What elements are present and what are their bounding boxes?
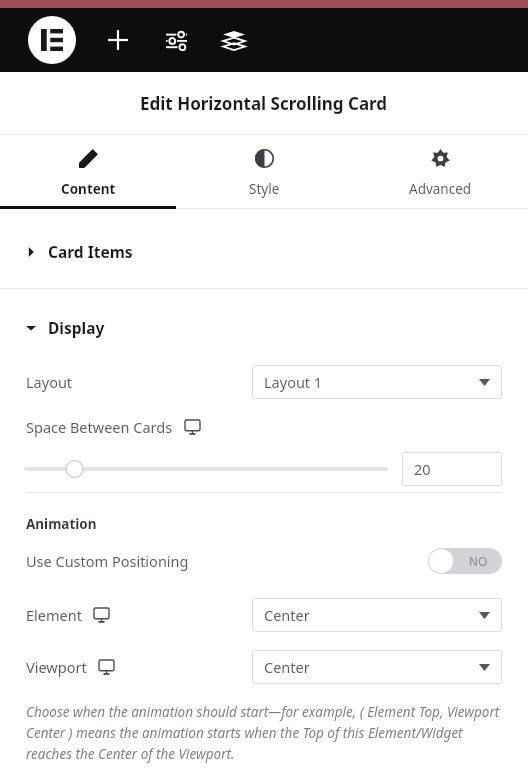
staticText: Layout	[26, 372, 73, 392]
button[interactable]: Center	[252, 598, 502, 632]
staticText: Content	[61, 180, 116, 198]
staticText: Edit Horizontal Scrolling Card	[140, 92, 388, 115]
button[interactable]	[26, 457, 386, 481]
staticText: Use Custom Positioning	[26, 551, 189, 571]
staticText: Center	[264, 605, 310, 625]
button[interactable]: Advanced	[352, 135, 528, 206]
staticText: Space Between Cards	[26, 417, 173, 437]
staticText: Card Items	[48, 241, 133, 262]
staticText: Display	[48, 317, 105, 338]
staticText: Animation	[26, 515, 97, 533]
button[interactable]: Card Items	[0, 209, 528, 288]
button[interactable]: Style	[176, 135, 352, 206]
button[interactable]: Settings	[156, 20, 196, 60]
button[interactable]: NO	[428, 548, 502, 574]
button[interactable]: Content	[0, 135, 176, 206]
button[interactable]: Elementor menu	[28, 16, 76, 64]
button[interactable]: Center	[252, 650, 502, 684]
staticText: Advanced	[409, 180, 472, 198]
button[interactable]: Layout 1	[252, 365, 502, 399]
staticText: NO	[469, 553, 488, 569]
staticText: Style	[249, 180, 280, 198]
button[interactable]: Layers	[214, 20, 254, 60]
staticText: Center	[264, 657, 310, 677]
staticText: 20	[414, 459, 431, 479]
staticText: Choose when the animation should start—f…	[26, 703, 502, 763]
staticText: Element	[26, 605, 82, 625]
button[interactable]: 20	[402, 452, 502, 486]
button[interactable]: Display	[0, 289, 528, 356]
staticText: Viewport	[26, 657, 87, 677]
staticText: Layout 1	[264, 372, 323, 392]
button[interactable]: Add	[98, 20, 138, 60]
